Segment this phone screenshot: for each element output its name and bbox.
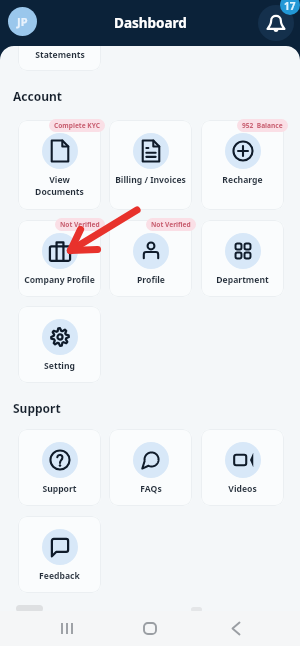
staticText: Dashboard bbox=[114, 14, 187, 32]
staticText: Department bbox=[216, 274, 269, 286]
staticText: Account bbox=[13, 88, 62, 104]
staticText: Not Verified bbox=[60, 220, 100, 229]
button[interactable]: Department bbox=[201, 220, 284, 297]
staticText: Company Profile bbox=[24, 274, 95, 286]
staticText: Complete KYC bbox=[54, 121, 100, 130]
button[interactable]: Billing / Invoices bbox=[109, 120, 192, 210]
staticText: 17 bbox=[284, 0, 296, 13]
button[interactable]: Recent apps bbox=[47, 611, 87, 646]
button[interactable]: Profile bbox=[109, 220, 192, 297]
staticText: Videos bbox=[228, 483, 257, 495]
button[interactable]: Support bbox=[18, 429, 101, 506]
button[interactable]: Notifications bbox=[258, 5, 294, 41]
staticText: FAQs bbox=[140, 483, 162, 495]
staticText: Not Verified bbox=[151, 220, 191, 229]
button[interactable]: Home bbox=[130, 611, 170, 646]
staticText: Profile bbox=[137, 274, 165, 286]
staticText: JP bbox=[17, 14, 28, 29]
button[interactable]: JP bbox=[8, 7, 37, 36]
button[interactable]: Feedback bbox=[18, 516, 101, 593]
button[interactable]: Videos bbox=[201, 429, 284, 506]
staticText: 952 Balance bbox=[242, 121, 283, 130]
staticText: Billing / Invoices bbox=[115, 174, 186, 186]
button[interactable]: FAQs bbox=[109, 429, 192, 506]
staticText: Support bbox=[13, 400, 61, 416]
button[interactable]: View Documents bbox=[18, 120, 101, 210]
button[interactable]: Company Profile bbox=[18, 220, 101, 297]
staticText: Support bbox=[42, 483, 77, 495]
staticText: Recharge bbox=[222, 174, 263, 186]
staticText: View Documents bbox=[35, 174, 84, 198]
staticText: Setting bbox=[44, 360, 75, 372]
staticText: Statements bbox=[35, 49, 85, 61]
button[interactable]: Recharge bbox=[201, 120, 284, 210]
button[interactable]: Setting bbox=[18, 306, 101, 383]
button[interactable]: Statements bbox=[18, 0, 101, 71]
button[interactable]: Back bbox=[216, 611, 256, 646]
staticText: Feedback bbox=[39, 570, 80, 582]
